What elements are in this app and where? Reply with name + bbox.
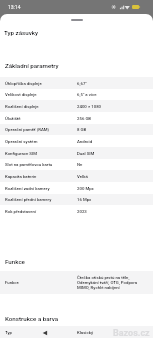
- button[interactable]: Rok představení: [0, 205, 153, 217]
- button[interactable]: Konfigurace SIM: [0, 147, 153, 159]
- staticText: 2400 × 1080: [77, 104, 102, 109]
- staticText: Typ: [5, 330, 77, 335]
- staticText: Slot na paměťovou kartu: [5, 162, 77, 167]
- staticText: Operační paměť (RAM): [5, 127, 77, 132]
- button[interactable]: Úložiště: [0, 112, 153, 124]
- staticText: 16 Mpx: [77, 197, 92, 202]
- staticText: 8 GB: [77, 127, 87, 132]
- staticText: Typ zásuvky: [4, 29, 38, 36]
- button[interactable]: Typ: [0, 326, 153, 338]
- staticText: Kapacita baterie: [5, 174, 77, 179]
- staticText: Čtečka otisků prstů na těle, Odemykání t…: [77, 275, 149, 290]
- button[interactable]: Úhlopříčka displeje: [0, 77, 153, 89]
- staticText: 2023: [77, 209, 87, 214]
- staticText: Rozlišení zadní kamery: [5, 186, 77, 191]
- button[interactable]: Rozlišení přední kamery: [0, 194, 153, 205]
- button[interactable]: Operační paměť (RAM): [0, 124, 153, 135]
- button[interactable]: Rozlišení displeje: [0, 100, 153, 112]
- staticText: Rozlišení přední kamery: [5, 197, 77, 202]
- staticText: Úhlopříčka displeje: [5, 81, 77, 86]
- staticText: Klasický: [77, 330, 94, 335]
- staticText: Základní parametry: [5, 62, 59, 69]
- staticText: Funkce: [5, 280, 77, 285]
- staticText: Bazos.cz: [113, 328, 150, 339]
- button[interactable]: Kapacita baterie: [0, 170, 153, 182]
- button[interactable]: Back: [40, 328, 50, 338]
- staticText: Android: [77, 139, 93, 144]
- staticText: Operační systém: [5, 139, 77, 144]
- staticText: 6,67": [77, 81, 87, 86]
- staticText: 13:14: [8, 4, 21, 10]
- staticText: Velikost displeje: [5, 92, 77, 97]
- staticText: Konfigurace SIM: [5, 151, 77, 156]
- button[interactable]: Operační systém: [0, 135, 153, 147]
- button[interactable]: Slot na paměťovou kartu: [0, 159, 153, 170]
- button[interactable]: Velikost displeje: [0, 89, 153, 100]
- button[interactable]: Funkce: [0, 271, 153, 294]
- button[interactable]: Rozlišení zadní kamery: [0, 182, 153, 194]
- staticText: Rozlišení displeje: [5, 104, 77, 109]
- staticText: 200 Mpx: [77, 186, 94, 191]
- staticText: Konstrukce a barva: [5, 315, 59, 322]
- staticText: 6,5" a více: [77, 92, 97, 97]
- staticText: Funkce: [5, 258, 25, 265]
- staticText: Velká: [77, 174, 88, 179]
- staticText: 256 GB: [77, 116, 92, 121]
- staticText: Rok představení: [5, 209, 77, 214]
- staticText: Dual SIM: [77, 151, 95, 156]
- staticText: Úložiště: [5, 116, 77, 121]
- staticText: Ne: [77, 162, 83, 167]
